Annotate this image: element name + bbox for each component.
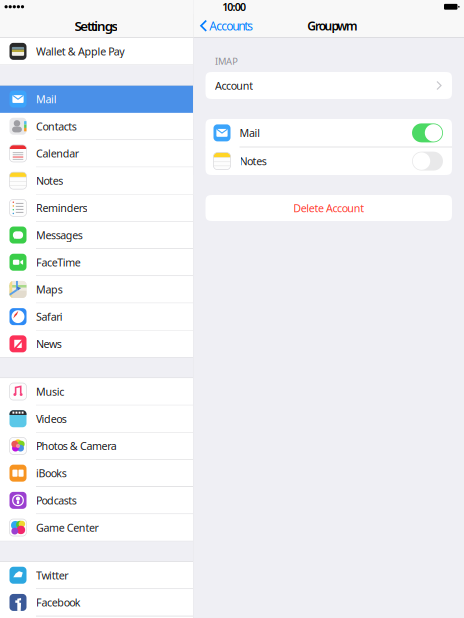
button[interactable]: Mail toggle: [412, 123, 443, 142]
staticText: News: [36, 337, 62, 351]
button[interactable]: Messages: [0, 222, 193, 249]
staticText: Messages: [36, 228, 83, 242]
button[interactable]: Accounts: [193, 14, 253, 37]
staticText: Groupwm: [307, 18, 358, 34]
button[interactable]: Podcasts: [0, 487, 193, 514]
staticText: Settings: [74, 17, 118, 35]
staticText: Twitter: [36, 568, 68, 582]
staticText: Safari: [36, 310, 63, 324]
staticText: iBooks: [36, 466, 67, 480]
button[interactable]: Calendar: [0, 140, 193, 167]
button[interactable]: Contacts: [0, 113, 193, 140]
staticText: Notes: [36, 174, 63, 188]
staticText: Podcasts: [36, 493, 77, 507]
button[interactable]: Reminders: [0, 194, 193, 222]
staticText: Account: [215, 78, 253, 93]
button[interactable]: Notes toggle: [412, 152, 443, 171]
staticText: Reminders: [36, 201, 87, 215]
button[interactable]: Music: [0, 378, 193, 405]
button[interactable]: News: [0, 330, 193, 358]
staticText: Videos: [36, 412, 67, 426]
button[interactable]: Safari: [0, 303, 193, 330]
staticText: Game Center: [36, 520, 98, 535]
button[interactable]: Account: [205, 72, 452, 99]
staticText: Notes: [239, 154, 267, 168]
staticText: Facebook: [36, 595, 81, 610]
staticText: Photos & Camera: [36, 439, 117, 453]
button[interactable]: Twitter: [0, 562, 193, 589]
staticText: Wallet & Apple Pay: [36, 44, 124, 58]
staticText: 10:00: [222, 0, 246, 14]
button[interactable]: FaceTime: [0, 249, 193, 276]
staticText: Calendar: [36, 146, 79, 161]
button[interactable]: Notes: [0, 167, 193, 194]
staticText: Contacts: [36, 119, 77, 133]
staticText: Accounts: [209, 18, 253, 34]
button[interactable]: Delete Account: [205, 195, 452, 221]
button[interactable]: iBooks: [0, 460, 193, 487]
button[interactable]: Mail: [0, 86, 193, 113]
button[interactable]: Photos & Camera: [0, 433, 193, 460]
button[interactable]: Facebook: [0, 589, 193, 616]
button[interactable]: Videos: [0, 405, 193, 433]
button[interactable]: Wallet & Apple Pay: [0, 38, 193, 65]
button[interactable]: Maps: [0, 276, 193, 303]
staticText: Music: [36, 384, 64, 399]
staticText: Mail: [36, 92, 57, 106]
staticText: Delete Account: [293, 201, 364, 215]
staticText: FaceTime: [36, 255, 81, 269]
staticText: IMAP: [215, 55, 238, 67]
staticText: Mail: [239, 126, 260, 140]
button[interactable]: Game Center: [0, 514, 193, 541]
staticText: Maps: [36, 282, 63, 297]
